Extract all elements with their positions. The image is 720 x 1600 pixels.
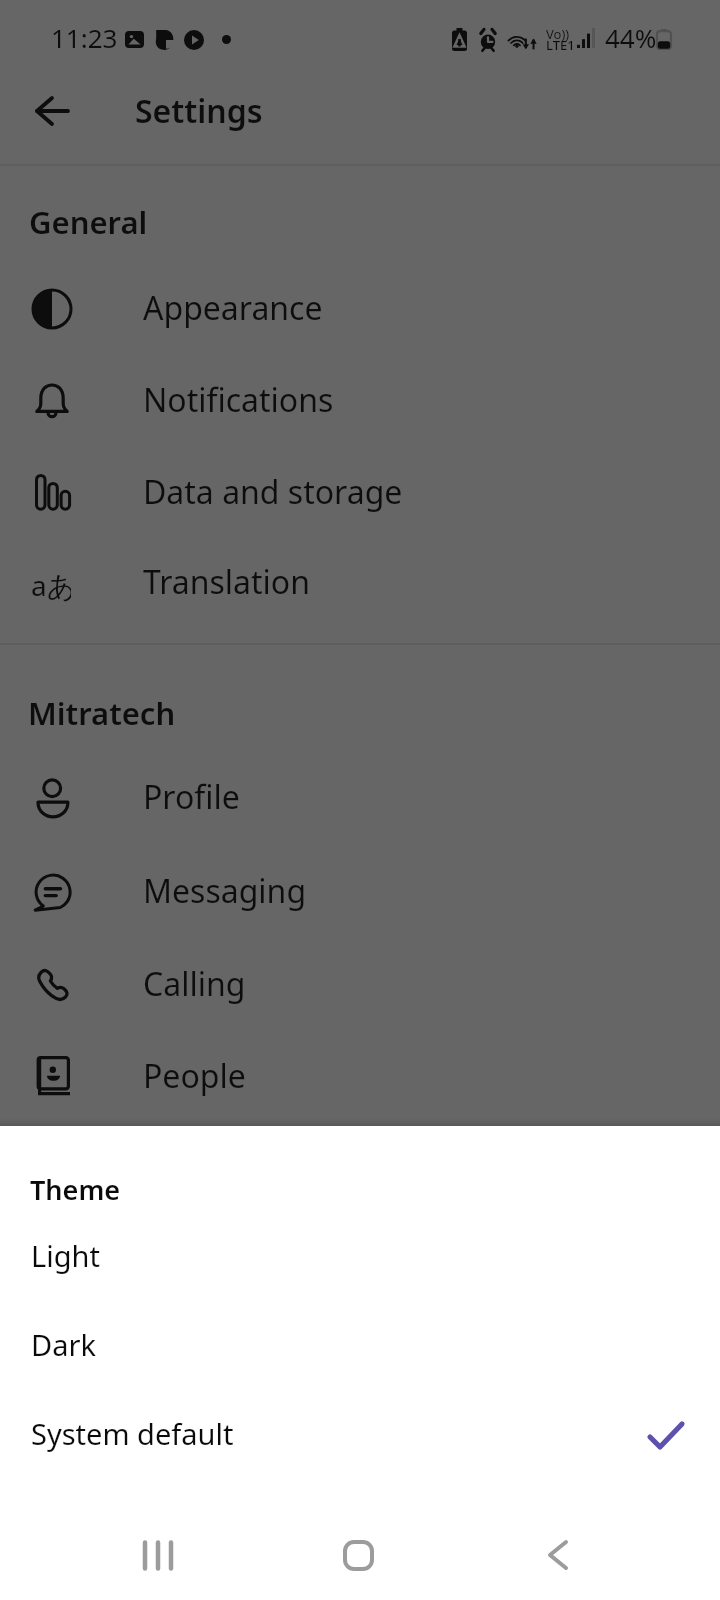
staticText: Settings bbox=[135, 89, 263, 133]
staticText: Appearance bbox=[143, 286, 323, 330]
button[interactable]: Dark bbox=[0, 1304, 720, 1393]
staticText: Mitratech bbox=[28, 692, 176, 734]
staticText: 11:23 bbox=[51, 20, 118, 55]
staticText: System default bbox=[31, 1414, 234, 1453]
button[interactable]: Notifications bbox=[0, 355, 720, 446]
button[interactable]: Profile bbox=[0, 752, 720, 843]
button[interactable]: aあ bbox=[0, 537, 720, 628]
staticText: Dark bbox=[31, 1325, 96, 1364]
button[interactable]: Appearance bbox=[0, 263, 720, 354]
button[interactable]: Dismiss dialog bbox=[0, 0, 720, 1600]
staticText: LTE1 bbox=[546, 36, 575, 54]
staticText: aあ bbox=[31, 566, 71, 604]
staticText: General bbox=[29, 201, 148, 243]
button[interactable]: Data and storage bbox=[0, 447, 720, 538]
staticText: Data and storage bbox=[143, 470, 403, 514]
button[interactable]: People bbox=[0, 1031, 720, 1122]
button[interactable]: Navigate up bbox=[16, 75, 88, 147]
staticText: Light bbox=[31, 1236, 100, 1275]
button[interactable]: Messaging bbox=[0, 846, 720, 937]
button[interactable]: Back bbox=[513, 1510, 603, 1600]
staticText: Notifications bbox=[143, 378, 334, 422]
button[interactable]: Light bbox=[0, 1215, 720, 1304]
staticText: Messaging bbox=[143, 869, 307, 913]
staticText: Translation bbox=[143, 560, 310, 604]
staticText: Profile bbox=[143, 775, 240, 819]
staticText: 44% bbox=[605, 20, 657, 55]
staticText: Theme bbox=[30, 1171, 121, 1208]
button[interactable]: Calling bbox=[0, 939, 720, 1030]
staticText: Vo)) bbox=[546, 25, 570, 43]
button[interactable]: Home bbox=[313, 1510, 403, 1600]
button[interactable]: System default bbox=[0, 1393, 720, 1482]
button[interactable]: Recent apps bbox=[113, 1510, 203, 1600]
staticText: Calling bbox=[143, 962, 246, 1006]
staticText: People bbox=[143, 1054, 246, 1098]
